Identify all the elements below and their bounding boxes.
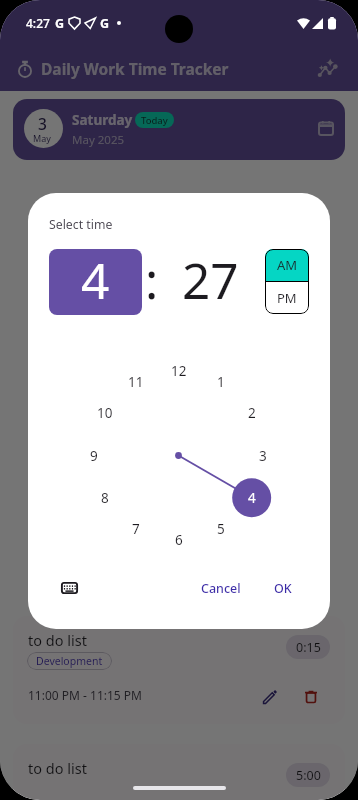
staticText: to do list xyxy=(28,758,87,778)
staticText: 11:00 PM - 11:15 PM xyxy=(28,687,142,703)
staticText: Select time xyxy=(49,216,113,233)
staticText: 3 xyxy=(38,113,47,134)
button[interactable]: 3 xyxy=(247,444,279,468)
button[interactable]: 1 xyxy=(205,370,237,394)
staticText: G xyxy=(100,15,110,32)
staticText: PM xyxy=(277,289,297,307)
button[interactable]: 8 xyxy=(89,486,121,510)
button[interactable]: 10 xyxy=(89,401,121,425)
staticText: OK xyxy=(274,580,292,597)
staticText: : xyxy=(145,246,159,313)
button[interactable]: 6 xyxy=(163,528,195,552)
button[interactable]: to do list xyxy=(13,616,345,724)
button[interactable]: 3 xyxy=(13,99,345,160)
staticText: 12 xyxy=(171,362,187,380)
button[interactable]: Cancel xyxy=(194,574,248,602)
staticText: 6 xyxy=(175,531,183,549)
button[interactable]: to do list xyxy=(13,744,345,800)
staticText: 4 xyxy=(81,249,110,312)
button[interactable]: 4 xyxy=(49,249,142,315)
staticText: 11 xyxy=(128,373,144,391)
staticText: 9 xyxy=(90,447,98,465)
button[interactable]: AM xyxy=(265,249,309,281)
staticText: AM xyxy=(277,256,298,274)
staticText: Development xyxy=(36,654,103,668)
staticText: 0:15 xyxy=(296,639,321,656)
staticText: 5:00 xyxy=(296,767,321,784)
staticText: Cancel xyxy=(201,580,241,597)
button[interactable]: 9 xyxy=(78,444,110,468)
staticText: 7 xyxy=(132,520,140,538)
staticText: May xyxy=(33,132,51,144)
staticText: G xyxy=(55,15,65,32)
staticText: 2 xyxy=(248,404,256,422)
button[interactable]: Pick date xyxy=(312,114,340,142)
button[interactable]: Switch to text input xyxy=(55,574,83,602)
staticText: Daily Work Time Tracker xyxy=(41,58,229,79)
staticText: Saturday xyxy=(72,111,133,129)
staticText: 27 xyxy=(182,249,239,312)
staticText: 10 xyxy=(97,404,113,422)
button[interactable]: 7 xyxy=(120,517,152,541)
button[interactable]: 12 xyxy=(163,359,195,383)
staticText: to do list xyxy=(28,630,87,650)
button[interactable]: 4 xyxy=(236,486,268,510)
button[interactable]: 27 xyxy=(165,249,258,315)
staticText: Today xyxy=(141,114,168,127)
staticText: 5 xyxy=(217,520,225,538)
button[interactable]: PM xyxy=(265,282,309,314)
button[interactable]: OK xyxy=(267,574,299,602)
staticText: 1 xyxy=(217,373,225,391)
button[interactable]: 2 xyxy=(236,401,268,425)
button[interactable]: 5 xyxy=(205,517,237,541)
staticText: 4:27 xyxy=(26,15,50,31)
button[interactable]: 11 xyxy=(120,370,152,394)
button[interactable]: Statistics xyxy=(312,54,342,84)
button[interactable]: Delete xyxy=(297,682,325,710)
staticText: 4 xyxy=(248,489,256,507)
staticText: May 2025 xyxy=(72,132,125,148)
staticText: 8 xyxy=(101,489,109,507)
staticText: 3 xyxy=(259,447,267,465)
button[interactable]: Edit xyxy=(256,683,284,711)
